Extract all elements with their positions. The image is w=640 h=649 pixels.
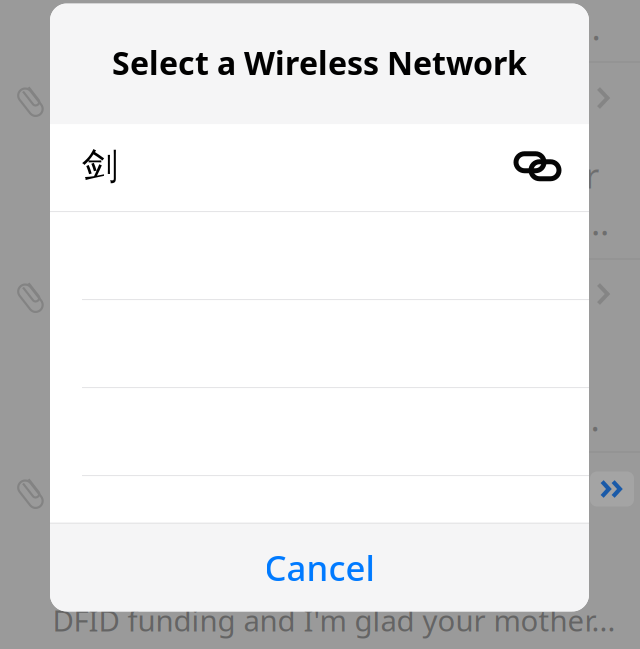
button[interactable]: 剑 xyxy=(50,124,589,211)
button[interactable]: Cancel xyxy=(50,524,589,611)
staticText: r xyxy=(585,152,599,198)
staticText: Cancel xyxy=(264,544,374,590)
staticText: DFID funding and I'm glad your mother... xyxy=(52,600,615,639)
staticText: 剑 xyxy=(82,144,118,188)
staticText: Select a Wireless Network xyxy=(112,41,527,84)
staticText: . xyxy=(590,395,599,441)
staticText: .. xyxy=(591,199,609,245)
staticText: . xyxy=(591,4,600,50)
